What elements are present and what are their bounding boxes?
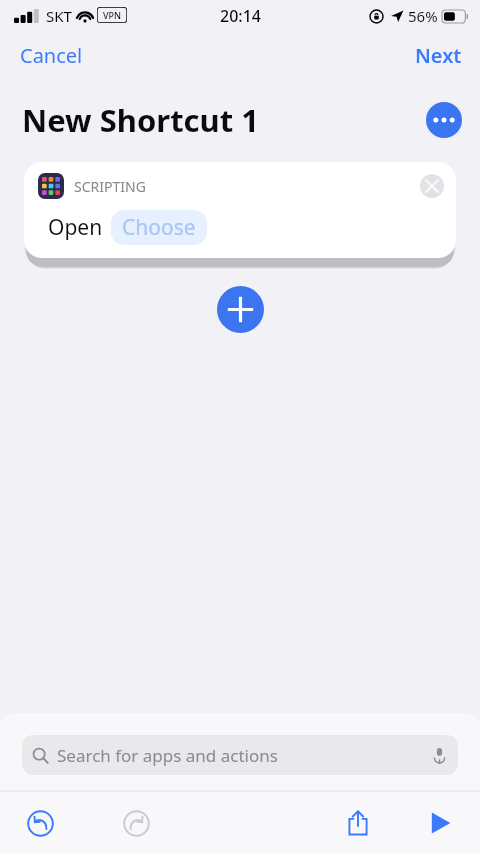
button[interactable]: Cancel — [0, 38, 103, 72]
button[interactable]: More options — [426, 102, 462, 138]
staticText: Open — [48, 213, 103, 242]
staticText: Choose — [122, 213, 196, 242]
button[interactable]: Redo — [114, 801, 158, 845]
staticText: New Shortcut 1 — [22, 99, 259, 141]
button[interactable]: Run — [418, 801, 462, 845]
button[interactable]: Share — [336, 801, 380, 845]
staticText: 20:14 — [220, 5, 261, 27]
staticText: Next — [415, 42, 462, 68]
staticText: 56% — [408, 6, 438, 26]
button[interactable]: Remove action — [420, 174, 444, 198]
staticText: Cancel — [20, 42, 83, 68]
button[interactable]: Undo — [18, 801, 62, 845]
staticText: VPN — [103, 9, 122, 21]
button[interactable]: Next — [397, 38, 480, 72]
staticText: SCRIPTING — [74, 177, 146, 196]
button[interactable]: Add action — [217, 286, 264, 333]
staticText: Search for apps and actions — [57, 744, 278, 767]
button[interactable]: Search for apps and actions — [22, 735, 458, 775]
button[interactable]: SCRIPTING — [24, 162, 456, 258]
button[interactable]: Choose — [111, 210, 207, 245]
other: Voice search — [431, 747, 448, 764]
staticText: SKT — [46, 6, 72, 26]
